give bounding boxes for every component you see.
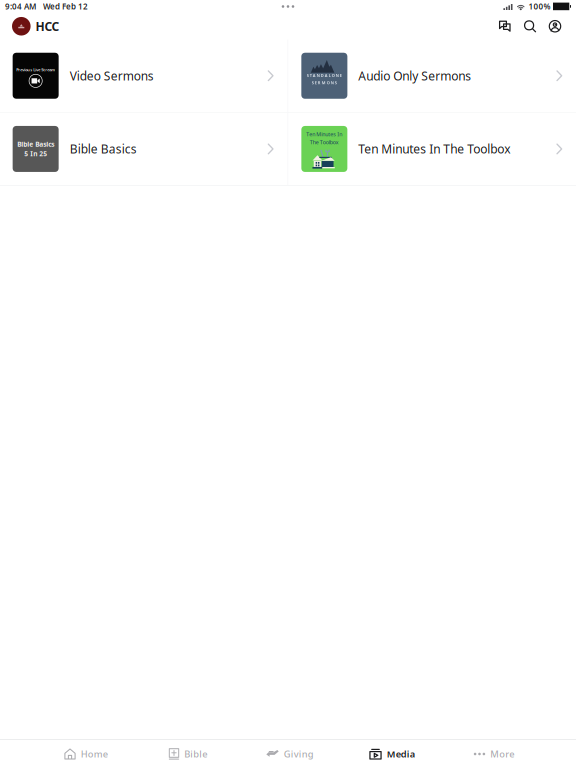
button[interactable]: More <box>443 740 545 768</box>
button[interactable]: Messages <box>493 13 517 39</box>
staticText: 100% <box>528 1 550 12</box>
button[interactable]: S T A N D A L O N E <box>288 39 576 112</box>
button[interactable]: Previous Live Stream <box>0 39 288 112</box>
button[interactable]: Ten Minutes In <box>288 113 576 185</box>
button[interactable]: Account <box>543 13 567 39</box>
button[interactable]: Giving <box>239 740 341 768</box>
staticText: Bible Basics <box>70 141 137 157</box>
button[interactable]: Bible Basics <box>0 113 288 185</box>
staticText: 9:04 AM <box>5 1 36 12</box>
button[interactable]: Bible <box>137 740 239 768</box>
staticText: The Toolbox <box>310 139 339 146</box>
button[interactable]: Search <box>518 13 542 39</box>
staticText: HCC <box>36 18 60 34</box>
staticText: S E R M O N S <box>312 80 337 85</box>
button[interactable]: Home <box>35 740 137 768</box>
staticText: More <box>490 748 514 760</box>
button[interactable]: Media <box>341 740 443 768</box>
staticText: Media <box>387 748 415 760</box>
staticText: Ten Minutes In <box>306 131 342 138</box>
button[interactable]: HCC <box>0 13 72 39</box>
staticText: Bible Basics <box>17 140 54 149</box>
staticText: Giving <box>284 748 314 760</box>
staticText: Previous Live Stream <box>16 67 55 72</box>
staticText: Audio Only Sermons <box>358 68 471 84</box>
staticText: Video Sermons <box>70 68 154 84</box>
staticText: Ten Minutes In The Toolbox <box>358 141 510 157</box>
staticText: Wed Feb 12 <box>43 1 88 12</box>
staticText: S T A N D A L O N E <box>307 73 342 78</box>
staticText: 5 In 25 <box>24 149 47 158</box>
staticText: Bible <box>184 748 207 760</box>
staticText: Home <box>81 748 108 760</box>
